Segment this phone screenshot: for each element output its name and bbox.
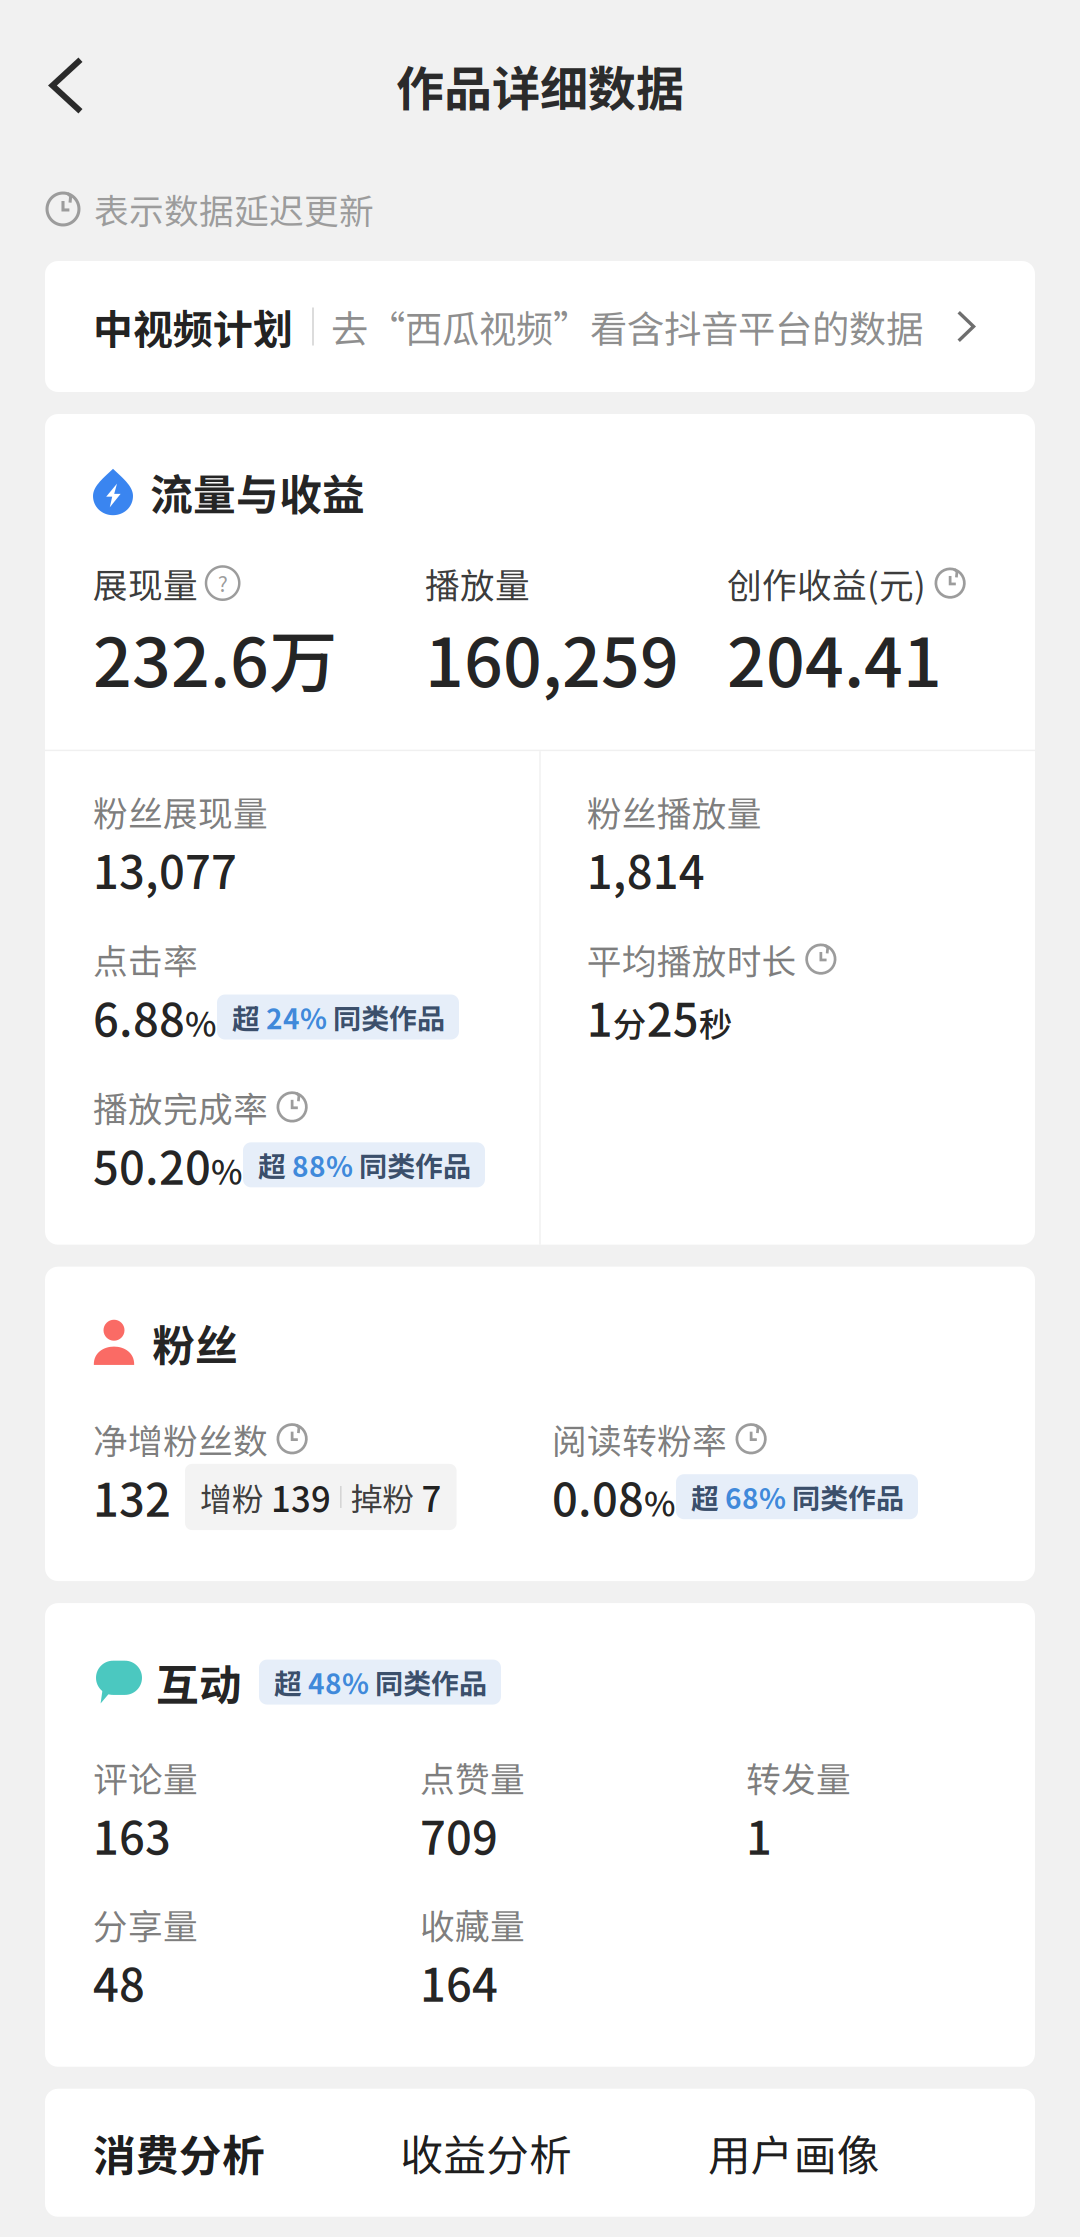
staticText: 1,814 [587,836,705,902]
staticText: 粉丝播放量 [587,786,762,836]
staticText: 6.88 [93,984,185,1050]
button[interactable]: 中视频计划 [45,261,1035,392]
staticText: 评论量 [93,1752,198,1802]
staticText: 增粉 [200,1474,271,1520]
staticText: 点赞量 [420,1752,525,1802]
staticText: 160,259 [425,608,679,707]
staticText: ? [218,567,228,598]
staticText: 0.08 [552,1464,644,1529]
staticText: 48 [93,1949,145,2015]
staticText: 播放量 [425,558,530,608]
staticText: 13,077 [93,836,237,902]
staticText: 展现量 [93,558,198,608]
staticText: 播放完成率 [93,1082,268,1132]
staticText: 132 [93,1464,171,1530]
staticText: 创作收益(元) [727,558,926,608]
staticText: 232.6万 [93,608,337,707]
staticText: 709 [420,1802,498,1868]
staticText: 粉丝展现量 [93,786,268,836]
staticText: 掉粉 [351,1474,422,1520]
staticText: 超 [258,1145,292,1185]
staticText: 作品详细数据 [396,51,684,120]
staticText: 同类作品 [327,997,445,1037]
staticText: 点击率 [93,934,198,984]
button[interactable]: 消费分析 [93,2122,400,2184]
staticText: % [211,1146,243,1194]
staticText: 分享量 [93,1899,198,1949]
staticText: 净增粉丝数 [93,1414,268,1464]
staticText: % [185,998,217,1046]
staticText: 消费分析 [93,2122,265,2184]
staticText: 7 [422,1472,442,1522]
staticText: 同类作品 [369,1662,487,1702]
staticText: 同类作品 [786,1476,904,1517]
staticText: 139 [271,1472,331,1522]
staticText: 164 [420,1949,498,2015]
staticText: 50.20 [93,1132,211,1198]
staticText: 24% [266,997,327,1037]
staticText: 去“西瓜视频”看含抖音平台的数据 [331,299,923,354]
staticText: 163 [93,1802,171,1868]
staticText: 88% [292,1145,353,1185]
staticText: 秒 [699,998,733,1046]
staticText: 1 [746,1802,772,1868]
staticText: 1 [587,984,613,1050]
staticText: 超 [232,997,266,1037]
staticText: 超 [691,1476,725,1517]
staticText: 平均播放时长 [587,934,797,984]
button[interactable]: 用户画像 [708,2122,1015,2184]
staticText: 互动 [156,1651,242,1713]
staticText: 超 [274,1662,308,1702]
staticText: 粉丝 [152,1312,238,1374]
staticText: 分 [613,998,647,1046]
staticText: 48% [308,1662,369,1702]
staticText: 25 [647,984,699,1050]
staticText: 204.41 [727,608,942,707]
staticText: 中视频计划 [93,297,293,355]
button[interactable]: 收益分析 [400,2122,708,2184]
staticText: 收益分析 [400,2122,572,2184]
staticText: 流量与收益 [150,461,365,523]
staticText: 68% [725,1476,786,1517]
staticText: % [644,1478,676,1526]
staticText: 收藏量 [420,1899,525,1949]
staticText: 阅读转粉率 [552,1414,727,1464]
staticText: 转发量 [746,1752,851,1802]
staticText: 用户画像 [708,2122,880,2184]
button[interactable]: 返回 [19,37,115,133]
staticText: 表示数据延迟更新 [94,184,374,234]
staticText: 同类作品 [353,1145,471,1185]
